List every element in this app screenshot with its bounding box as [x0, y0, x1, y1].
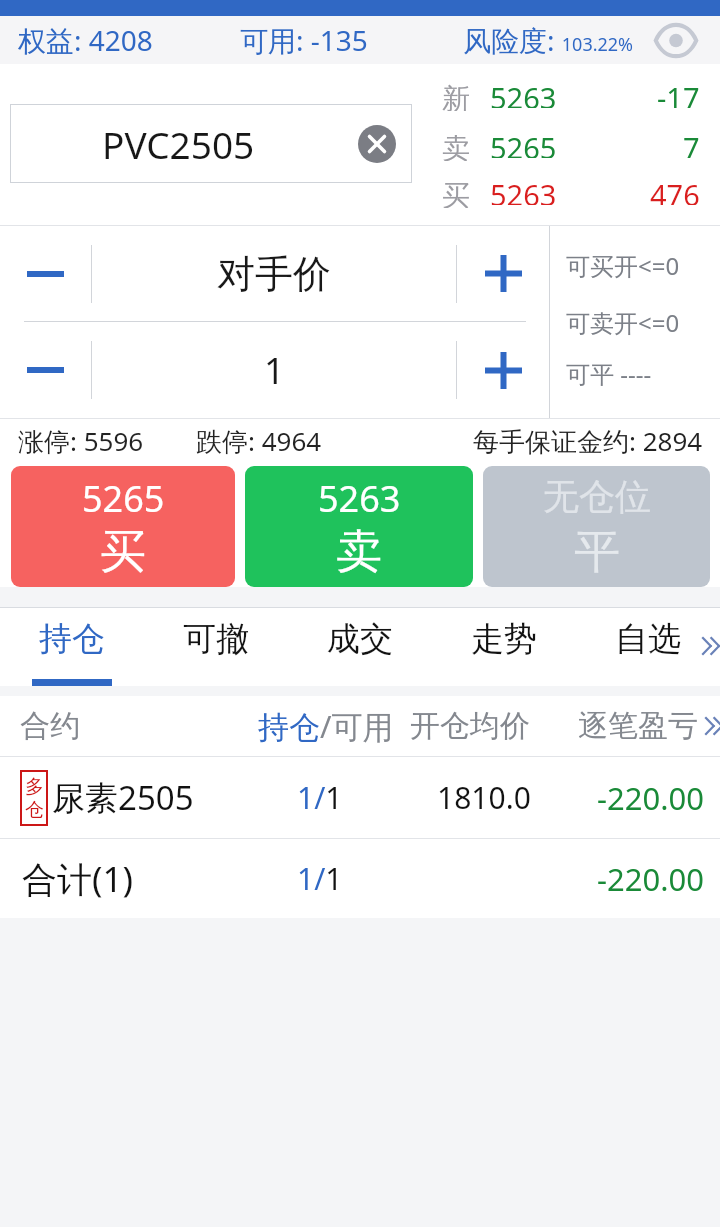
- staticText: 平: [574, 523, 620, 581]
- button[interactable]: Increase: [457, 226, 549, 321]
- button[interactable]: 走势: [464, 608, 544, 686]
- staticText: 5263: [318, 474, 401, 523]
- staticText: 卖: [442, 131, 470, 161]
- staticText: 持仓: [39, 618, 105, 660]
- staticText: 尿素2505: [52, 775, 194, 820]
- staticText: PVC2505: [102, 119, 255, 169]
- staticText: 476: [650, 175, 700, 205]
- staticText: 可平 ----: [566, 357, 652, 390]
- staticText: 合计(1): [22, 855, 134, 903]
- staticText: 逐笔盈亏: [578, 707, 698, 745]
- staticText: 卖: [336, 523, 382, 581]
- staticText: -17: [657, 78, 700, 108]
- staticText: 5265: [82, 474, 165, 523]
- staticText: 5263: [490, 175, 557, 205]
- staticText: 无仓位: [543, 474, 651, 519]
- staticText: 走势: [471, 618, 537, 660]
- staticText: 可撤: [183, 618, 249, 660]
- button[interactable]: Clear contract: [358, 125, 396, 163]
- staticText: 权益: 4208: [18, 21, 153, 59]
- button[interactable]: 可撤: [176, 608, 256, 686]
- staticText: 合约: [20, 707, 80, 745]
- staticText: 风险度: 103.22%: [463, 21, 634, 59]
- button[interactable]: 持仓: [32, 608, 112, 686]
- button[interactable]: Toggle balance visibility: [650, 16, 702, 64]
- staticText: 涨停: 5596: [18, 423, 144, 459]
- staticText: 1/1: [297, 777, 343, 818]
- button[interactable]: 多 仓: [0, 757, 720, 838]
- staticText: 买: [442, 178, 470, 208]
- staticText: 持仓/可用: [258, 705, 394, 747]
- staticText: 新: [442, 81, 470, 111]
- button[interactable]: 5265: [11, 466, 235, 587]
- button[interactable]: 成交: [320, 608, 400, 686]
- staticText: 可用: -135: [240, 21, 368, 59]
- staticText: 跌停: 4964: [196, 423, 322, 459]
- staticText: 可卖开<=0: [566, 306, 680, 339]
- button[interactable]: Increase: [457, 322, 549, 418]
- staticText: 开仓均价: [410, 707, 530, 745]
- staticText: 7: [683, 128, 700, 158]
- staticText: 5263: [490, 78, 557, 108]
- staticText: 可买开<=0: [566, 249, 680, 282]
- staticText: 1: [264, 346, 285, 395]
- button[interactable]: Decrease: [0, 322, 91, 418]
- staticText: -220.00: [597, 777, 704, 819]
- staticText: 买: [100, 523, 146, 581]
- button[interactable]: PVC2505: [10, 104, 412, 183]
- button[interactable]: 5263: [245, 466, 473, 587]
- staticText: 5265: [490, 128, 557, 158]
- staticText: 成交: [327, 618, 393, 660]
- staticText: -220.00: [597, 858, 704, 900]
- staticText: 1/1: [297, 858, 343, 899]
- staticText: 自选: [615, 618, 681, 660]
- staticText: 对手价: [217, 250, 331, 298]
- staticText: 每手保证金约: 2894: [473, 423, 703, 459]
- staticText: 1810.0: [437, 777, 531, 818]
- button[interactable]: 无仓位: [483, 466, 710, 587]
- button[interactable]: Decrease: [0, 226, 91, 321]
- staticText: 多 仓: [25, 775, 44, 822]
- button[interactable]: 自选: [608, 608, 688, 686]
